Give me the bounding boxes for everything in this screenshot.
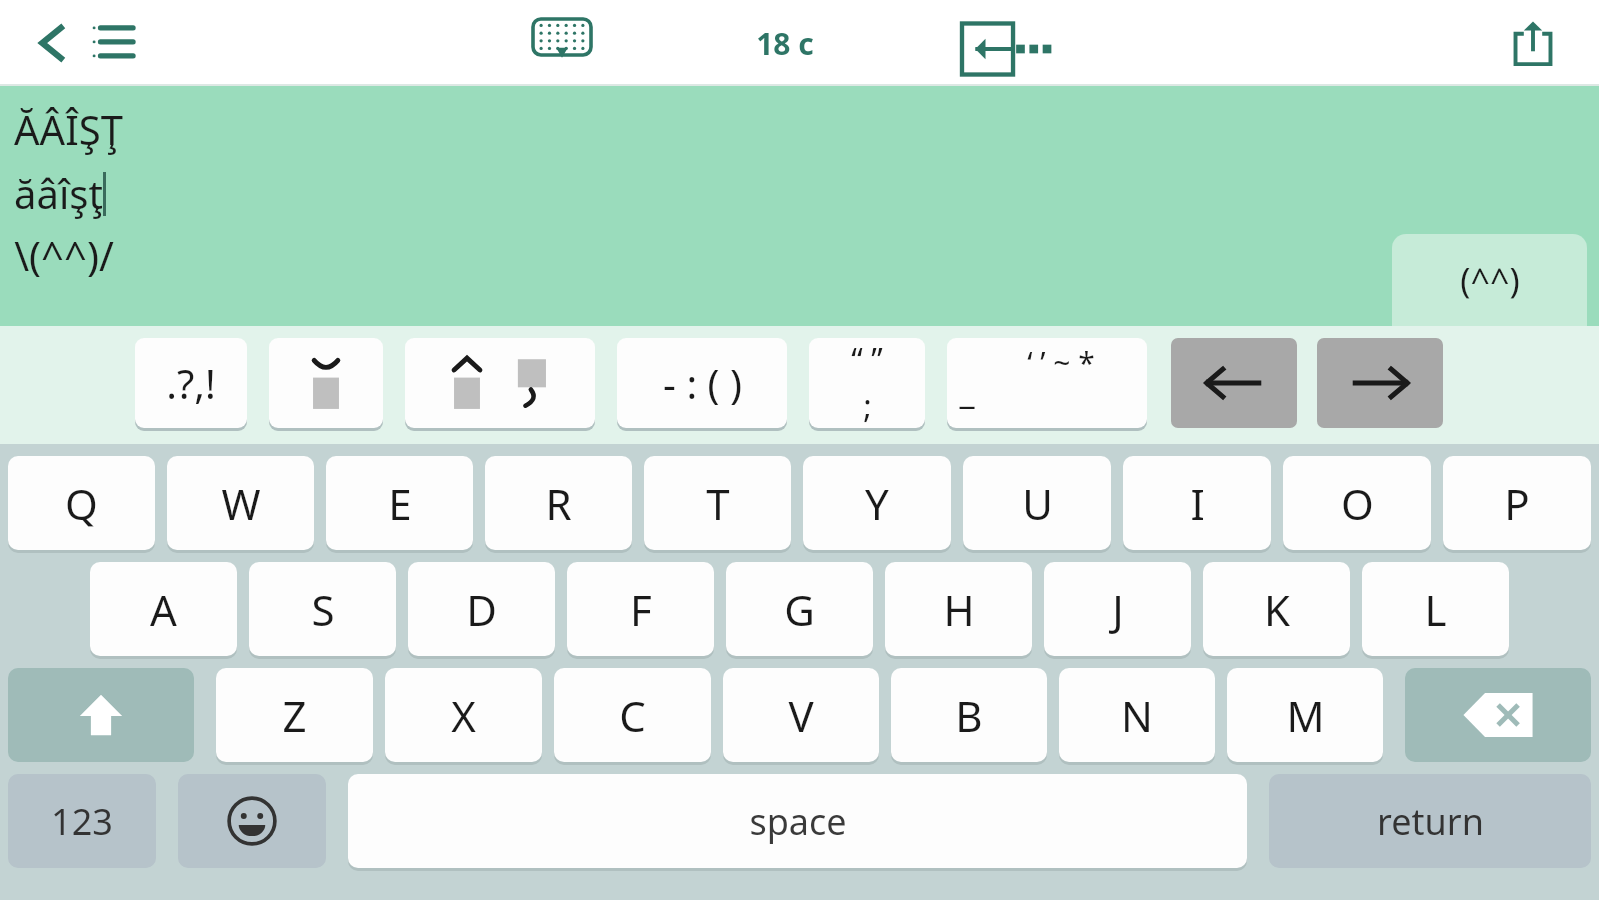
staticText: 123 [51, 797, 113, 846]
button[interactable]: Hide keyboard [520, 6, 604, 90]
button[interactable]: “ ” [809, 338, 925, 428]
button[interactable]: X [385, 668, 542, 762]
button[interactable]: Move left [1171, 338, 1297, 428]
button[interactable]: 123 [8, 774, 156, 868]
staticText: .?,! [166, 356, 216, 410]
staticText: D [466, 581, 497, 638]
staticText: Z [282, 687, 307, 744]
staticText: B [955, 687, 983, 744]
button[interactable]: W [167, 456, 314, 550]
staticText: “ ” [851, 338, 883, 382]
staticText: T [706, 475, 730, 532]
staticText: - : ( ) [663, 356, 742, 410]
staticText: \(^^)/ [14, 228, 114, 282]
staticText: O [1341, 475, 1374, 532]
button[interactable]: List [78, 8, 148, 78]
button[interactable]: H [885, 562, 1032, 656]
staticText: (^^) [1460, 257, 1520, 303]
button[interactable]: Z [216, 668, 373, 762]
button[interactable]: I [1123, 456, 1271, 550]
button[interactable]: Backspace [1405, 668, 1591, 762]
staticText: R [545, 475, 572, 532]
button[interactable]: C [554, 668, 711, 762]
button[interactable]: M [1227, 668, 1383, 762]
button[interactable]: O [1283, 456, 1431, 550]
staticText: P [1504, 475, 1530, 532]
staticText: return [1377, 797, 1484, 846]
staticText: L [1424, 581, 1447, 638]
staticText: G [784, 581, 815, 638]
staticText: 18 c [756, 23, 814, 64]
staticText: Y [865, 475, 889, 532]
button[interactable]: Insert [960, 6, 1060, 92]
staticText: ăâîşţ [14, 166, 103, 220]
staticText: U [1022, 475, 1053, 532]
button[interactable]: R [485, 456, 632, 550]
button[interactable]: N [1059, 668, 1215, 762]
staticText: C [619, 687, 646, 744]
button[interactable]: D [408, 562, 555, 656]
staticText: H [943, 581, 975, 638]
button[interactable]: P [1443, 456, 1591, 550]
button[interactable]: S [249, 562, 396, 656]
staticText: S [311, 581, 335, 638]
button[interactable]: Q [8, 456, 155, 550]
staticText: Q [65, 475, 98, 532]
staticText: _ [959, 368, 975, 414]
button[interactable] [405, 338, 595, 428]
staticText: X [451, 687, 476, 744]
button[interactable]: G [726, 562, 873, 656]
button[interactable]: J [1044, 562, 1191, 656]
button[interactable] [269, 338, 383, 428]
button[interactable]: Shift [8, 668, 194, 762]
button[interactable]: L [1362, 562, 1509, 656]
button[interactable]: A [90, 562, 237, 656]
button[interactable]: Emoji [178, 774, 326, 868]
staticText: N [1121, 687, 1153, 744]
staticText: ‘ ’ ~ * [1027, 342, 1095, 383]
button[interactable]: return [1269, 774, 1591, 868]
button[interactable]: - : ( ) [617, 338, 787, 428]
staticText: A [150, 581, 177, 638]
staticText: ĂÂÎŞŢ [14, 102, 123, 156]
staticText: ; [863, 384, 872, 428]
button[interactable]: 18 c [700, 6, 870, 80]
staticText: space [749, 797, 847, 846]
button[interactable]: V [723, 668, 879, 762]
button[interactable]: Y [803, 456, 951, 550]
staticText: I [1190, 475, 1205, 532]
button[interactable]: Move right [1317, 338, 1443, 428]
button[interactable]: space [348, 774, 1247, 868]
button[interactable]: E [326, 456, 473, 550]
button[interactable]: Back [18, 8, 88, 78]
staticText: J [1112, 581, 1124, 638]
button[interactable]: (^^) [1392, 234, 1587, 326]
staticText: V [788, 687, 814, 744]
staticText: E [388, 475, 412, 532]
staticText: W [221, 475, 261, 532]
button[interactable]: F [567, 562, 714, 656]
staticText: M [1286, 687, 1325, 744]
button[interactable]: K [1203, 562, 1350, 656]
button[interactable]: .?,! [135, 338, 247, 428]
button[interactable]: B [891, 668, 1047, 762]
button[interactable]: ‘ ’ ~ * [947, 338, 1147, 428]
button[interactable]: U [963, 456, 1111, 550]
staticText: K [1264, 581, 1290, 638]
button[interactable]: T [644, 456, 791, 550]
button[interactable]: Share [1495, 5, 1571, 81]
staticText: F [630, 581, 652, 638]
